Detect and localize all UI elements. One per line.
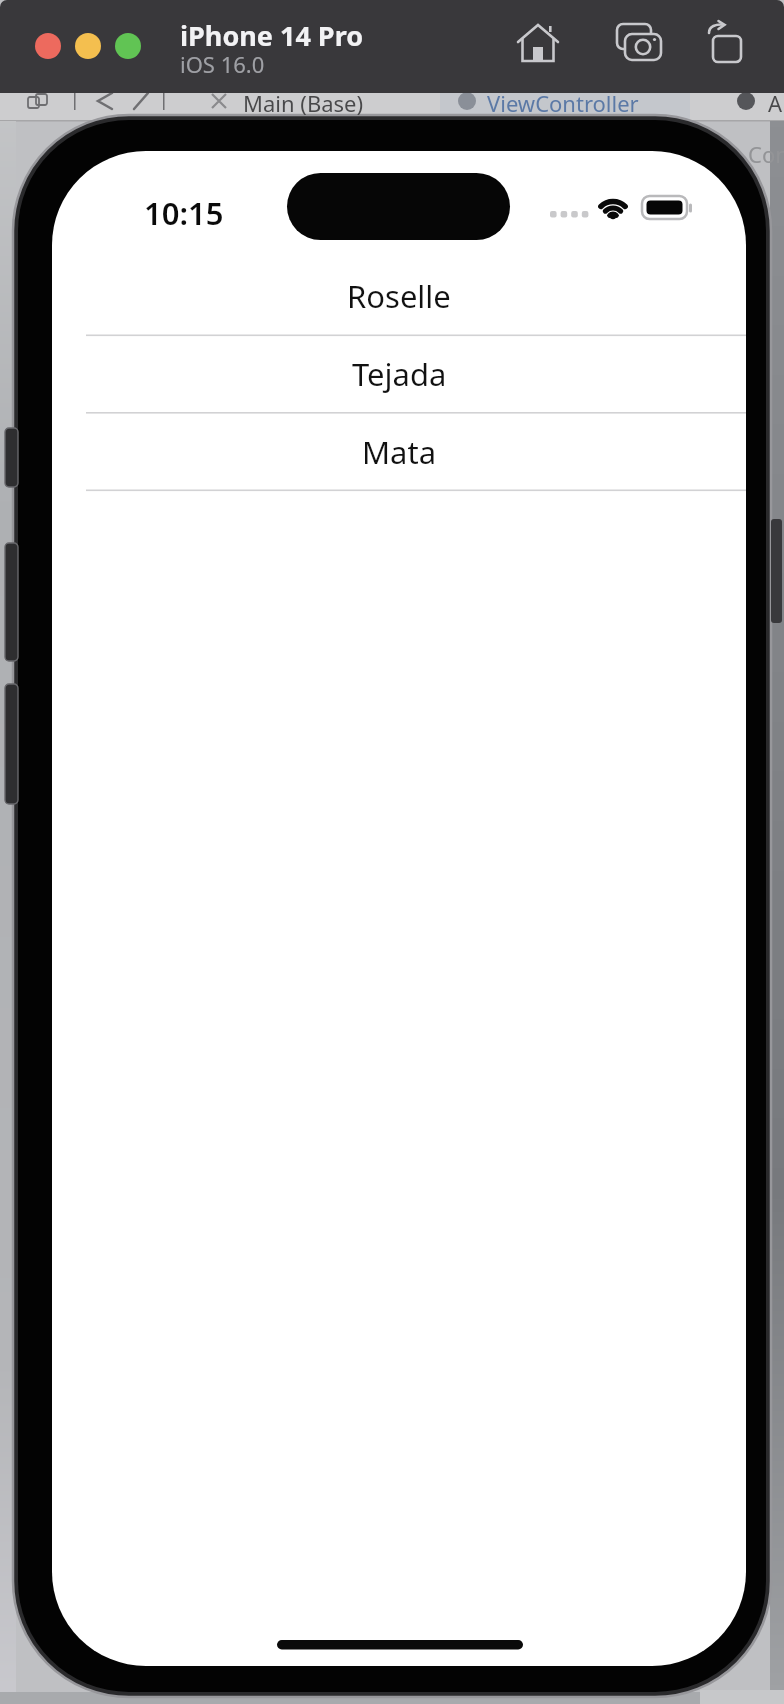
staticText: A (768, 88, 783, 118)
staticText: ViewController (487, 88, 639, 118)
button[interactable]: Tejada (52, 335, 746, 413)
staticText: Tejada (352, 353, 447, 395)
staticText: iPhone 14 Pro (180, 17, 364, 54)
button[interactable] (514, 21, 562, 69)
staticText: Con (748, 139, 784, 169)
staticText: Mata (362, 431, 437, 473)
button[interactable] (115, 33, 141, 59)
staticText: iOS 16.0 (180, 49, 265, 79)
button[interactable]: Mata (52, 413, 746, 491)
button[interactable] (703, 21, 751, 69)
button[interactable] (35, 33, 61, 59)
staticText: Roselle (347, 275, 451, 317)
staticText: Main (Base) (243, 88, 364, 118)
button[interactable] (612, 21, 664, 73)
button[interactable] (75, 33, 101, 59)
button[interactable]: Roselle (52, 257, 746, 335)
staticText: 10:15 (144, 192, 224, 234)
